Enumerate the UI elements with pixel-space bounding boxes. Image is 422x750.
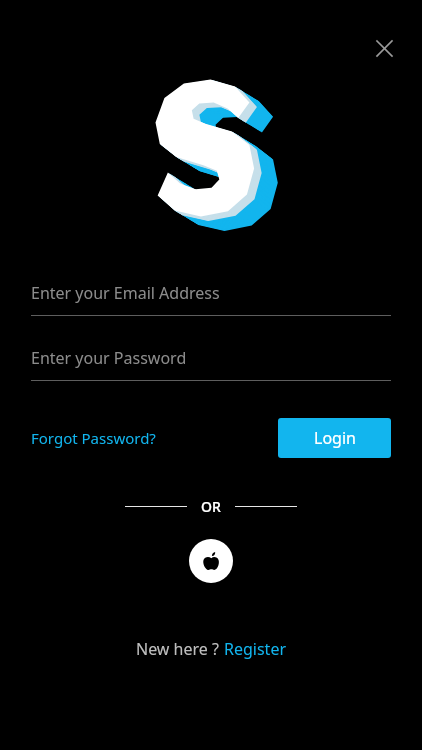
button[interactable]: Close [364,28,404,68]
staticText: OR [201,497,221,516]
staticText: Register [224,638,287,660]
button[interactable]: Login [278,418,391,458]
button[interactable]: Enter your Email Address [31,282,391,316]
staticText: Forgot Password? [31,428,156,448]
staticText: Enter your Email Address [31,282,220,304]
button[interactable]: Sign in with Apple [189,539,233,583]
staticText: Enter your Password [31,347,187,369]
button[interactable]: Enter your Password [31,347,391,381]
button[interactable]: Register [224,638,287,660]
staticText: Login [314,427,356,449]
button[interactable]: Forgot Password? [31,424,156,452]
staticText: New here ? [136,638,224,660]
